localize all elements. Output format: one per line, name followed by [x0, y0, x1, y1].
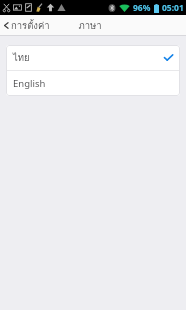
- staticText: ไทย: [13, 50, 30, 65]
- staticText: 96%: [133, 2, 151, 14]
- other: Back: [3, 22, 10, 29]
- staticText: English: [13, 77, 46, 90]
- staticText: ภาษา: [78, 18, 102, 33]
- button[interactable]: English: [6, 71, 180, 96]
- button[interactable]: ไทย: [6, 45, 180, 70]
- other: Selected: [164, 54, 173, 61]
- button[interactable]: Back: [0, 15, 56, 36]
- staticText: 05:01: [162, 2, 184, 14]
- staticText: การตั้งค่า: [11, 18, 50, 33]
